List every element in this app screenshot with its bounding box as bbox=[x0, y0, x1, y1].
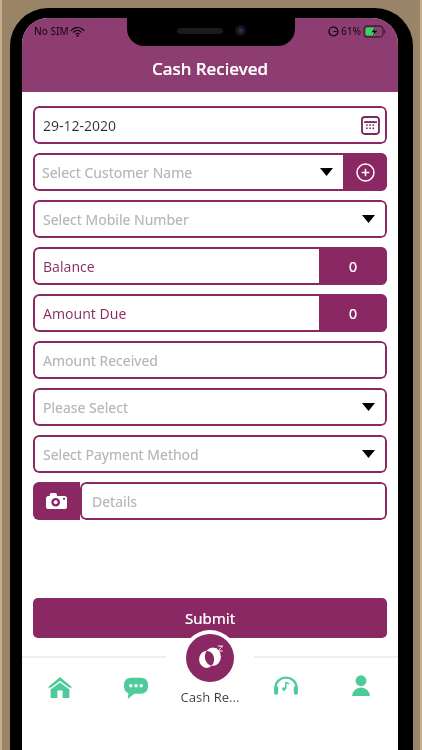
staticText: Submit bbox=[185, 608, 236, 628]
button[interactable]: Support bbox=[248, 668, 323, 716]
staticText: Select Mobile Number bbox=[43, 210, 189, 229]
staticText: Please Select bbox=[43, 398, 128, 417]
button[interactable]: 29-12-2020 bbox=[33, 106, 387, 144]
staticText: 61% bbox=[341, 24, 361, 38]
staticText: 0 bbox=[349, 304, 358, 323]
button[interactable]: Messages bbox=[98, 668, 173, 716]
button[interactable]: Amount Due bbox=[33, 294, 387, 332]
button[interactable]: Select Payment Method bbox=[33, 435, 387, 473]
staticText: Select Payment Method bbox=[43, 445, 199, 464]
button[interactable]: Add customer bbox=[343, 153, 387, 191]
button[interactable]: Take photo bbox=[33, 482, 80, 520]
staticText: 29-12-2020 bbox=[43, 116, 117, 135]
button[interactable]: Please Select bbox=[33, 388, 387, 426]
staticText: No SIM bbox=[34, 24, 69, 38]
staticText: Amount Due bbox=[43, 304, 127, 323]
staticText: Cash Recieved bbox=[152, 57, 268, 80]
button[interactable]: Balance bbox=[33, 247, 387, 285]
button[interactable]: Submit bbox=[33, 598, 387, 638]
button[interactable]: Amount Received bbox=[33, 341, 387, 379]
button[interactable]: Profile bbox=[323, 668, 398, 716]
staticText: Cash Re... bbox=[180, 688, 240, 706]
staticText: Balance bbox=[43, 257, 95, 276]
button[interactable]: Select Customer Name bbox=[33, 153, 343, 191]
button[interactable]: Home bbox=[22, 668, 98, 716]
staticText: Details bbox=[92, 492, 137, 511]
staticText: 0 bbox=[349, 257, 358, 276]
button[interactable]: Select Mobile Number bbox=[33, 200, 387, 238]
staticText: Amount Received bbox=[43, 351, 158, 370]
staticText: Select Customer Name bbox=[42, 163, 193, 182]
button[interactable]: Cash Recieved bbox=[186, 634, 234, 682]
button[interactable]: Pick date bbox=[362, 117, 379, 134]
button[interactable]: Details bbox=[80, 482, 387, 520]
